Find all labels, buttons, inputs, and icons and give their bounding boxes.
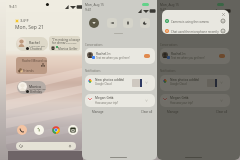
button[interactable]: Phone <box>17 125 27 135</box>
button[interactable]: Clear all <box>141 110 153 114</box>
button[interactable]: Megan Gms <box>85 94 155 107</box>
button[interactable]: Camera is using the camera <box>163 18 228 24</box>
button[interactable]: Camera <box>68 125 78 135</box>
staticText: · 1h <box>109 96 114 100</box>
staticText: Notifications <box>160 69 176 73</box>
staticText: 9:41 <box>85 8 92 12</box>
staticText: Camera is using the camera <box>171 20 209 24</box>
button[interactable]: Do not disturb <box>215 18 225 28</box>
staticText: Google Cloud <box>95 82 112 86</box>
button[interactable]: Monica <box>17 81 46 94</box>
staticText: New photos added <box>95 78 124 82</box>
staticText: Monica <box>29 84 41 89</box>
button[interactable]: Messages <box>34 125 44 135</box>
staticText: Rachel <box>29 40 40 45</box>
button[interactable]: Search <box>16 142 76 150</box>
button[interactable]: Clear all <box>216 110 228 114</box>
button[interactable]: New photos added <box>160 75 230 91</box>
staticText: Rachel Missed call <box>22 59 47 63</box>
staticText: Text me when you get here! <box>96 56 130 60</box>
staticText: Megan Gms <box>95 96 114 100</box>
button[interactable]: Airplane mode <box>182 18 192 28</box>
button[interactable]: New photos added <box>85 75 155 91</box>
button[interactable]: Rachel <box>16 37 48 51</box>
staticText: New photos added <box>170 78 199 82</box>
staticText: Mon, Aug 15 <box>160 3 179 7</box>
staticText: Google Cloud <box>170 82 187 86</box>
button[interactable]: Megan Gms <box>160 94 230 107</box>
button[interactable]: Airplane mode <box>107 18 117 28</box>
staticText: Birthday <box>30 90 42 94</box>
button[interactable]: Rachel <box>160 48 230 64</box>
staticText: 9:41 <box>160 8 167 12</box>
staticText: Rachel <box>171 52 182 56</box>
staticText: "I'm making a lasagna <box>52 38 80 42</box>
staticText: How was your trip? <box>170 101 194 105</box>
staticText: · 2m <box>105 52 111 56</box>
staticText: Conversations <box>85 43 103 47</box>
button[interactable]: Chrome <box>51 125 61 135</box>
staticText: 9:41 <box>9 4 17 9</box>
staticText: · 1h <box>118 78 123 82</box>
staticText: 34°F <box>20 18 29 23</box>
staticText: Notifications <box>85 69 101 73</box>
button[interactable]: Manage <box>92 110 104 114</box>
button[interactable]: Internet <box>164 18 174 28</box>
staticText: Rachel <box>96 52 107 56</box>
staticText: 10 minutes ago <box>29 87 46 90</box>
button[interactable]: Rachel Missed call <box>16 57 47 74</box>
staticText: Monica Geller <box>58 47 78 51</box>
staticText: Mon, Sep 21 <box>15 24 44 30</box>
button[interactable]: Manage <box>167 110 179 114</box>
staticText: for dinner" <box>52 41 67 45</box>
button[interactable]: Rachel <box>85 48 155 64</box>
staticText: 2 hours ago <box>64 42 77 45</box>
staticText: Chatted <box>30 47 42 51</box>
button[interactable]: Do not disturb <box>140 18 150 28</box>
staticText: Text me when you get here! <box>171 56 205 60</box>
button[interactable]: Reply <box>144 54 150 58</box>
button[interactable]: Battery saver <box>123 18 133 28</box>
staticText: Conversations <box>160 43 178 47</box>
button[interactable]: "I'm making a lasagna <box>49 36 80 51</box>
button[interactable]: Reply <box>219 54 225 58</box>
staticText: Chat used the microphone recently <box>171 30 219 34</box>
staticText: 2 minutes ago <box>29 44 46 47</box>
staticText: Friends <box>23 69 34 73</box>
button[interactable]: Battery saver <box>198 18 208 28</box>
staticText: How was your trip? <box>95 101 119 105</box>
staticText: Mon, Aug 15 <box>85 3 104 7</box>
button[interactable]: Chat used the microphone recently <box>163 28 228 34</box>
staticText: · 1h <box>184 96 189 100</box>
staticText: Megan Gms <box>170 96 189 100</box>
staticText: · 2m <box>180 52 186 56</box>
button[interactable]: Internet <box>89 18 99 28</box>
staticText: · 1h <box>193 78 198 82</box>
button[interactable]: Close <box>220 11 226 17</box>
